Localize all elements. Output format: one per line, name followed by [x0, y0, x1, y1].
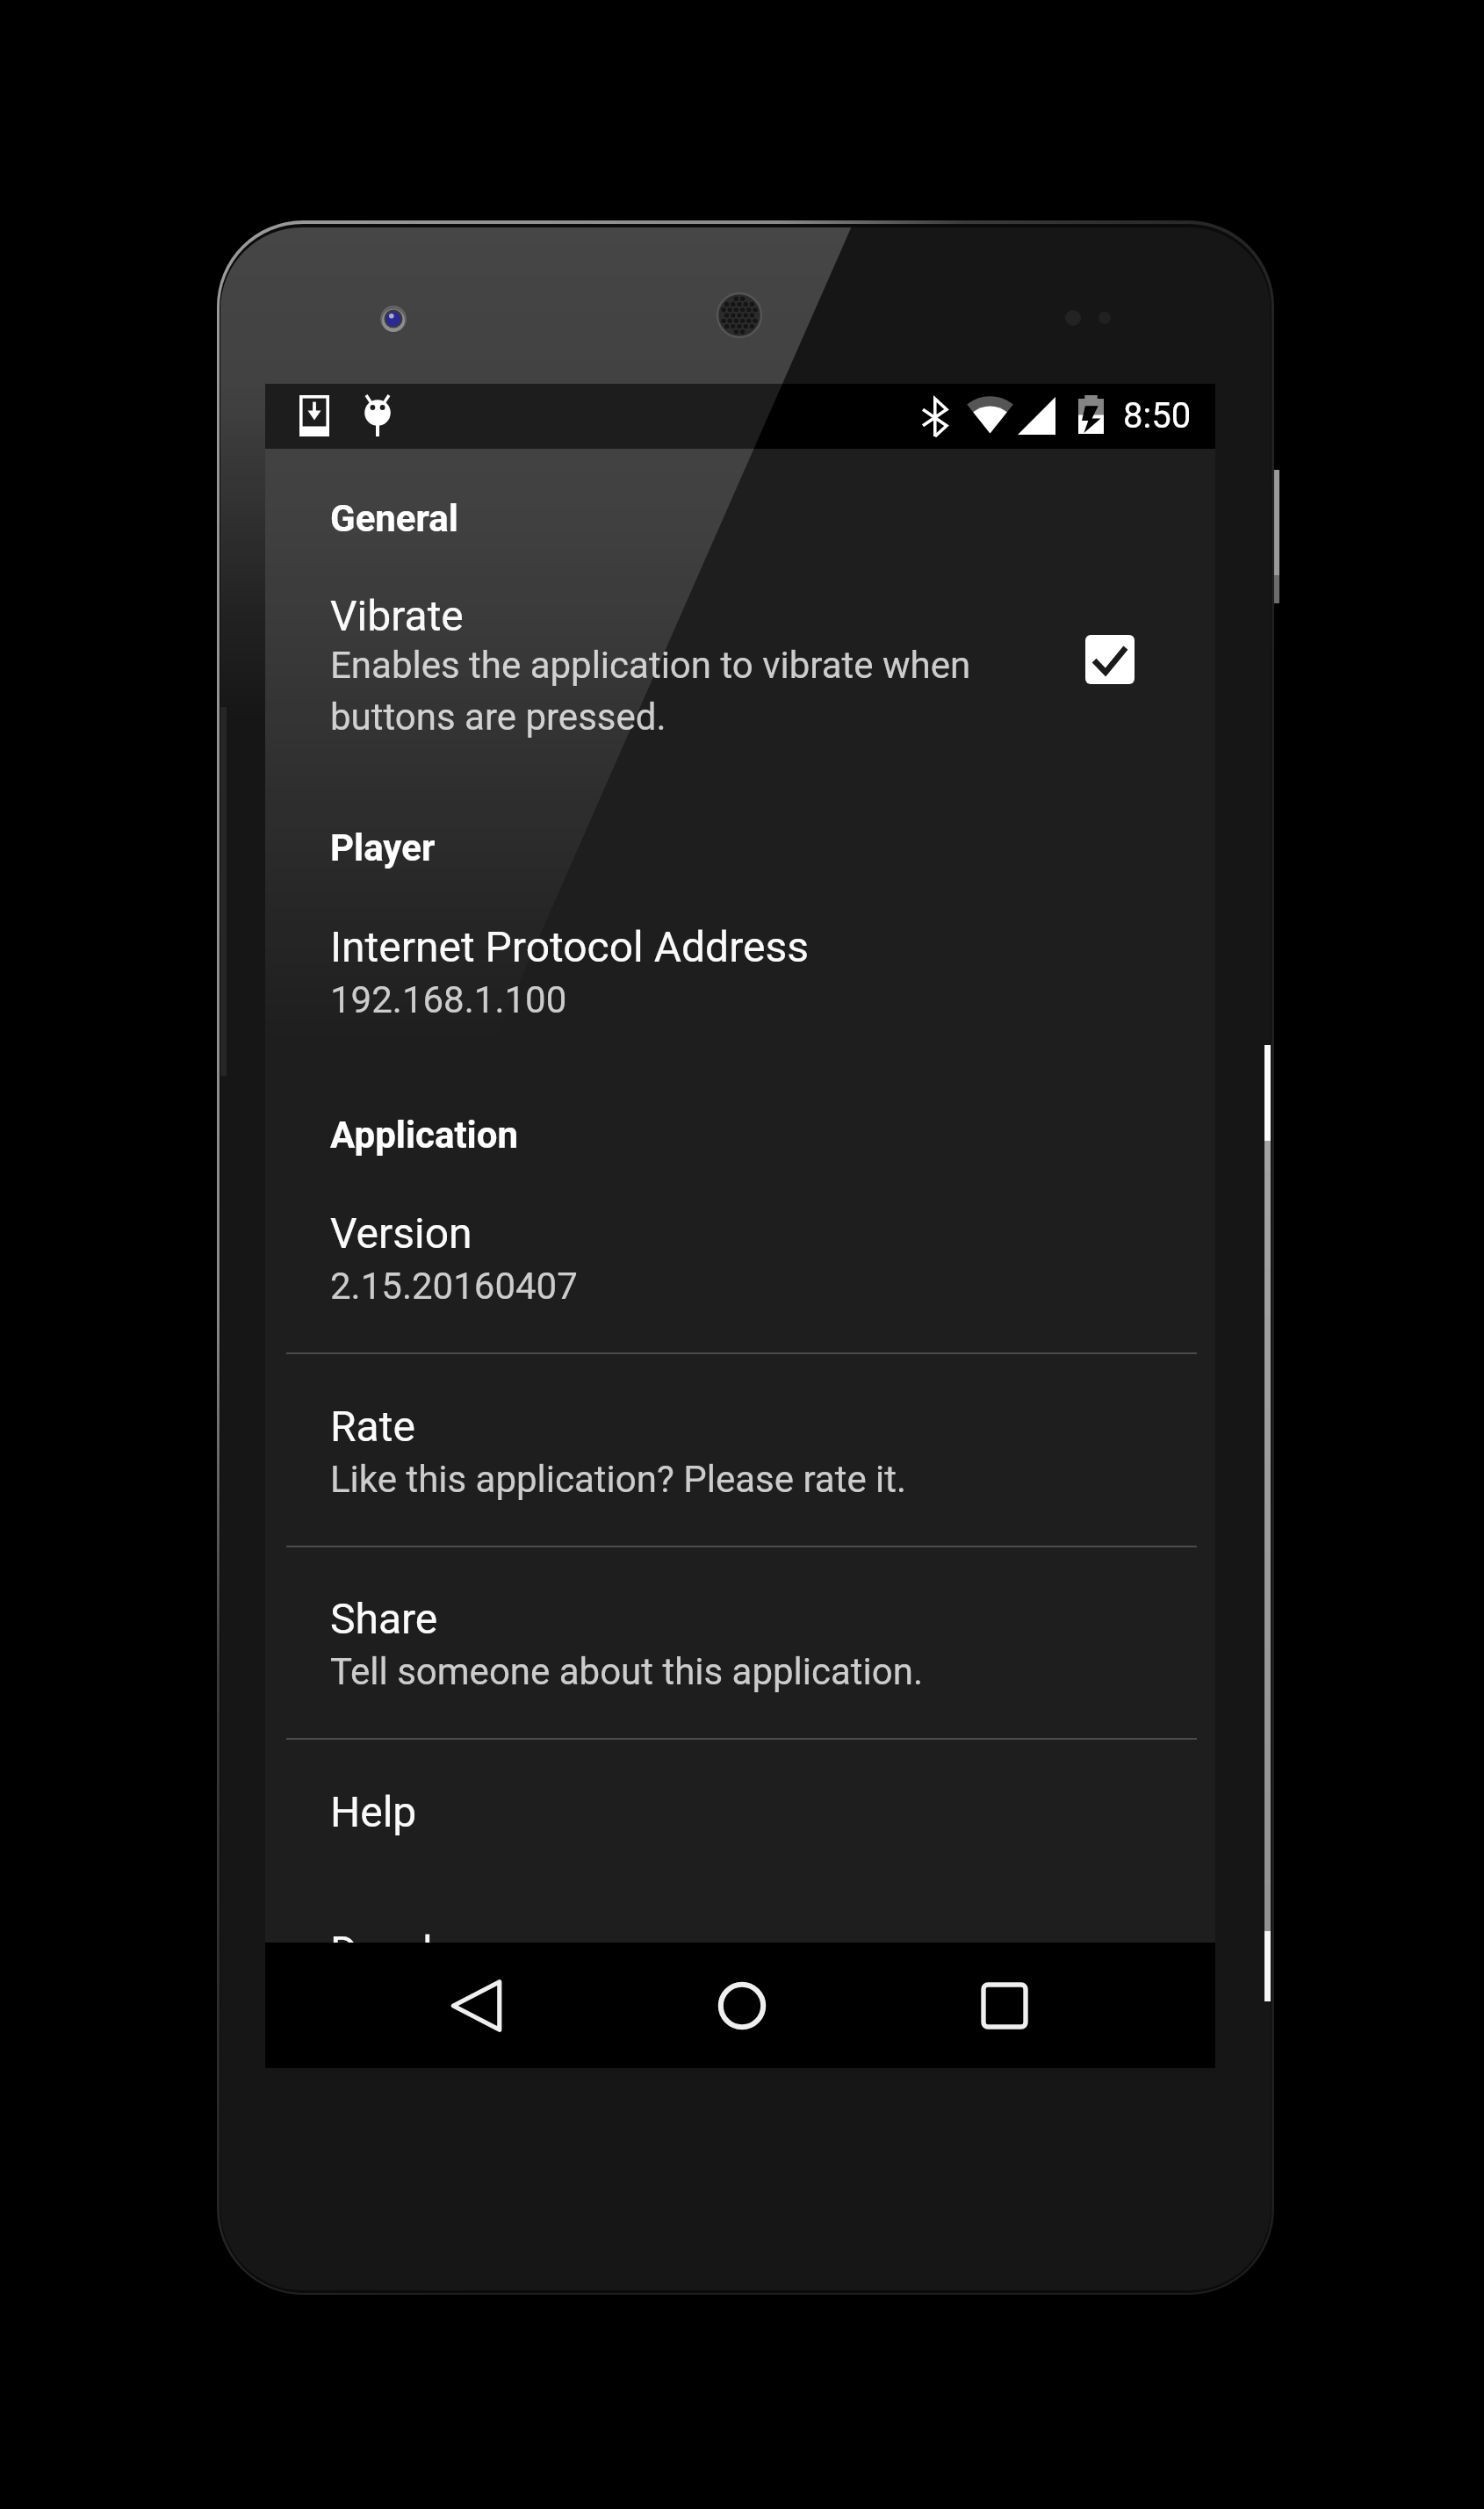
button[interactable]: [265, 571, 1215, 755]
staticText: Version: [330, 1208, 472, 1258]
staticText: Vibrate: [330, 591, 464, 640]
staticText: Share: [330, 1594, 438, 1643]
staticText: General: [330, 497, 458, 540]
button[interactable]: [265, 1879, 1215, 1943]
button[interactable]: [265, 900, 1215, 1032]
button[interactable]: [265, 1738, 1215, 1879]
staticText: Rate: [330, 1402, 415, 1451]
button[interactable]: Home: [689, 1953, 795, 2058]
button[interactable]: [265, 1546, 1215, 1738]
button[interactable]: [265, 1186, 1215, 1352]
staticText: Tell someone about this application.: [330, 1650, 924, 1693]
staticText: Internet Protocol Address: [330, 922, 809, 971]
staticText: Develop: [330, 1927, 481, 1976]
button[interactable]: [265, 1352, 1215, 1546]
staticText: Enables the application to vibrate when: [330, 644, 971, 687]
staticText: Help: [330, 1787, 417, 1836]
staticText: Like this application? Please rate it.: [330, 1458, 907, 1501]
staticText: buttons are pressed.: [330, 696, 666, 739]
button[interactable]: Vibrate enabled: [1085, 635, 1135, 684]
staticText: 2.15.20160407: [330, 1265, 578, 1308]
staticText: Application: [330, 1114, 518, 1157]
staticText: Player: [330, 826, 436, 869]
staticText: 192.168.1.100: [330, 978, 567, 1021]
button[interactable]: Back: [424, 1953, 529, 2058]
button[interactable]: Recent apps: [952, 1953, 1057, 2058]
staticText: 8:50: [1123, 395, 1192, 436]
